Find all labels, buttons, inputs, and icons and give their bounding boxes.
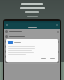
button[interactable]: Item action [4, 29, 60, 34]
button[interactable] [4, 54, 60, 59]
button[interactable]: Item action [4, 49, 60, 54]
button[interactable] [6, 39, 58, 62]
button[interactable]: Item action [57, 51, 59, 53]
button[interactable]: Item action [4, 59, 60, 64]
button[interactable] [40, 57, 47, 60]
button[interactable]: Item action [57, 41, 59, 43]
button[interactable] [49, 57, 56, 60]
button[interactable] [4, 44, 60, 49]
button[interactable] [4, 34, 60, 39]
button[interactable]: Item action [57, 61, 59, 63]
button[interactable]: Item action [4, 39, 60, 44]
button[interactable]: Menu [4, 21, 60, 29]
